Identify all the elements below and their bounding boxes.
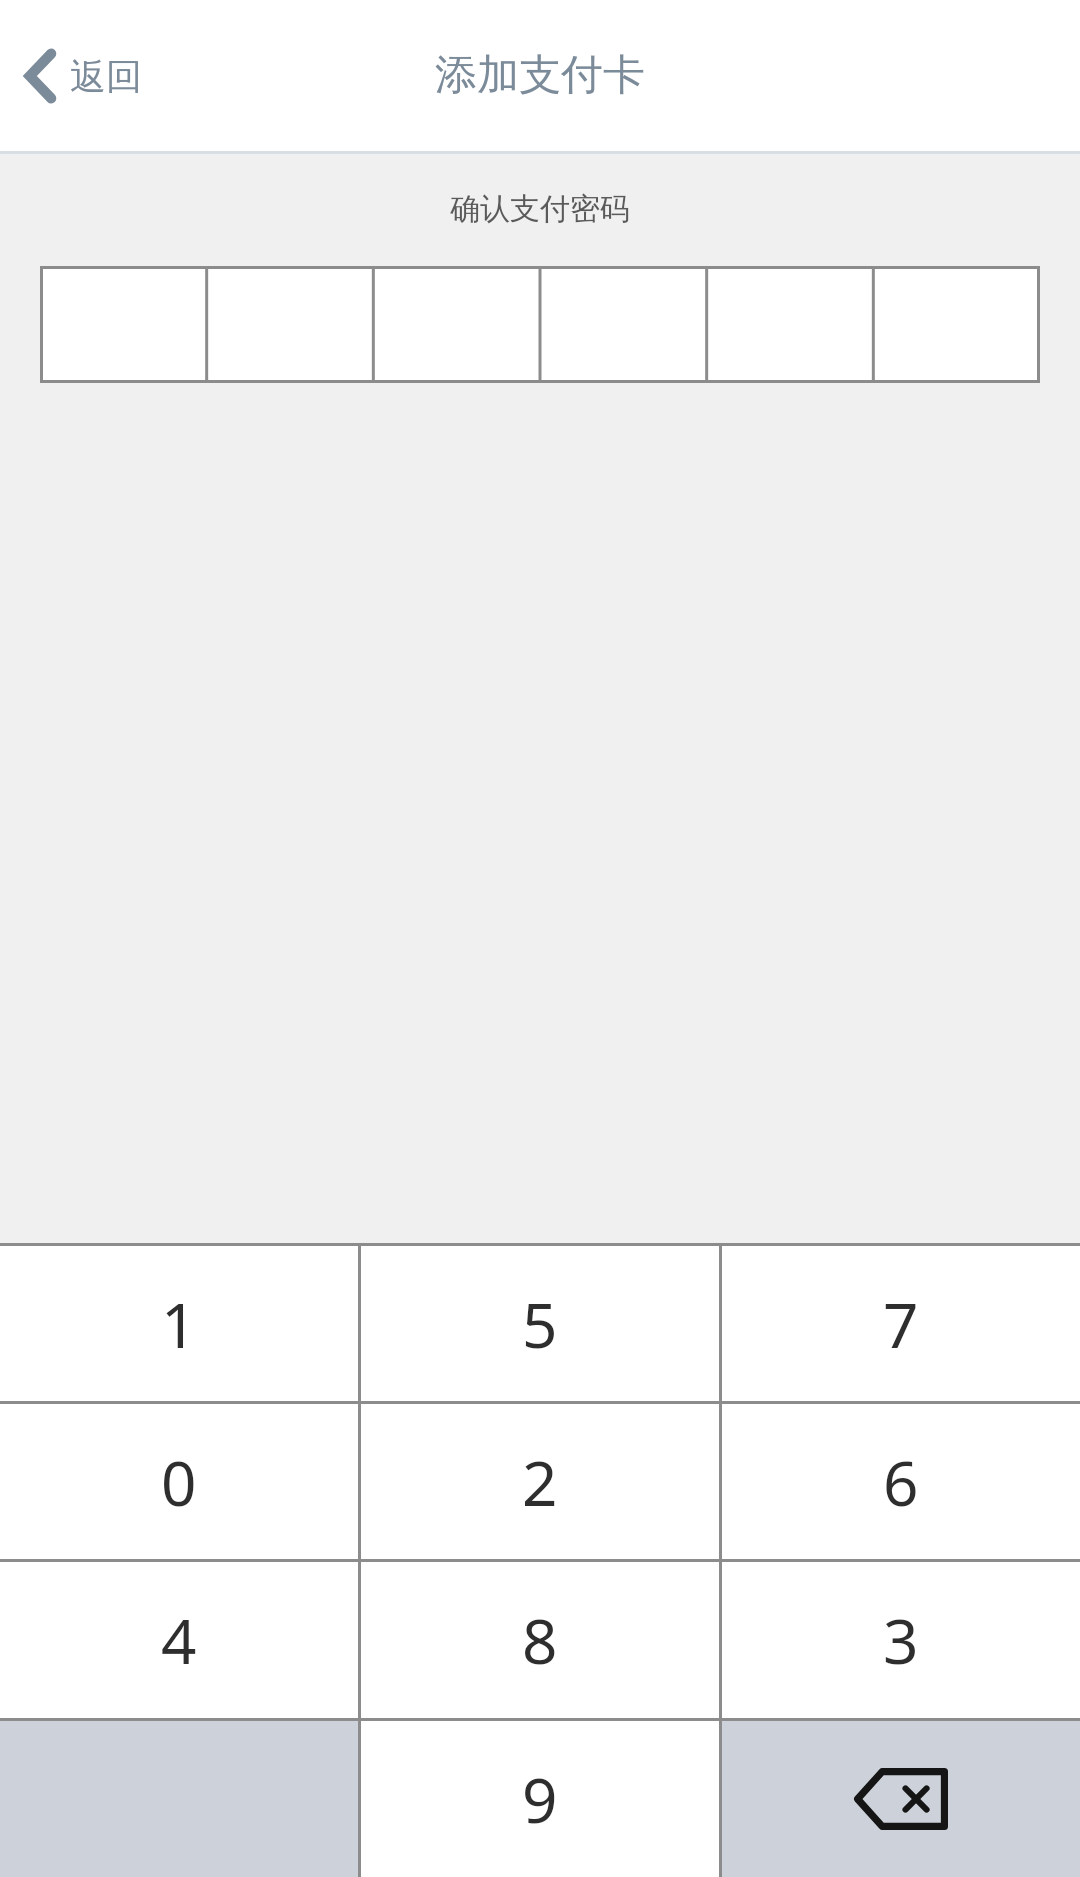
button[interactable]: 3: [722, 1562, 1080, 1718]
staticText: 7: [883, 1282, 919, 1366]
button[interactable]: 0: [0, 1404, 358, 1559]
staticText: 1: [161, 1282, 197, 1366]
button[interactable]: 2: [361, 1404, 719, 1559]
staticText: 添加支付卡: [435, 49, 645, 102]
staticText: 0: [161, 1440, 197, 1524]
button[interactable]: 8: [361, 1562, 719, 1718]
button[interactable]: 返回: [14, 38, 152, 114]
staticText: 确认支付密码: [0, 190, 1080, 228]
button[interactable]: Backspace: [722, 1721, 1080, 1877]
staticText: 返回: [70, 54, 142, 99]
button[interactable]: 5: [361, 1246, 719, 1401]
button[interactable]: 9: [361, 1721, 719, 1877]
button[interactable]: [40, 266, 1040, 383]
button[interactable]: 1: [0, 1246, 358, 1401]
button[interactable]: 6: [722, 1404, 1080, 1559]
staticText: 6: [883, 1440, 919, 1524]
staticText: 9: [522, 1757, 558, 1841]
staticText: 4: [161, 1598, 197, 1682]
staticText: 3: [883, 1598, 919, 1682]
button[interactable]: 7: [722, 1246, 1080, 1401]
staticText: 8: [522, 1598, 558, 1682]
button[interactable]: 4: [0, 1562, 358, 1718]
staticText: 5: [522, 1282, 558, 1366]
staticText: 2: [522, 1440, 558, 1524]
